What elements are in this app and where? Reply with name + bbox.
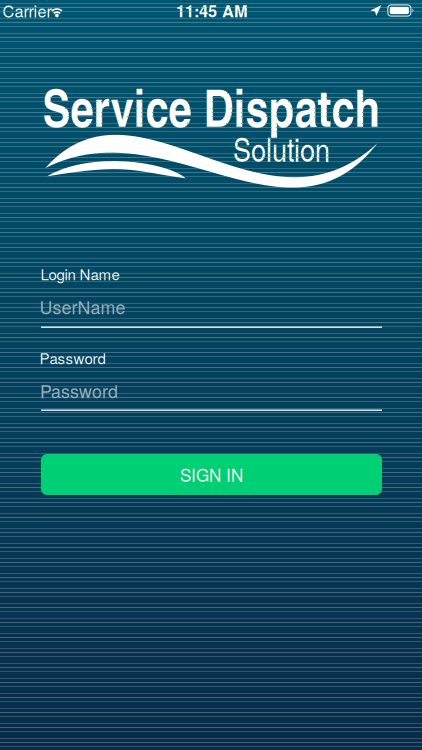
staticText: Password xyxy=(39,347,105,369)
staticText: 11:45 AM xyxy=(176,0,248,22)
staticText: Carrier xyxy=(2,0,51,22)
staticText: SIGN IN xyxy=(180,462,243,487)
button[interactable]: SIGN IN xyxy=(41,454,382,495)
staticText: Login Name xyxy=(40,263,119,285)
staticText: UserName xyxy=(39,294,125,319)
staticText: Password xyxy=(40,378,118,403)
staticText: Solution xyxy=(233,126,330,171)
staticText: Service Dispatch xyxy=(42,70,380,142)
